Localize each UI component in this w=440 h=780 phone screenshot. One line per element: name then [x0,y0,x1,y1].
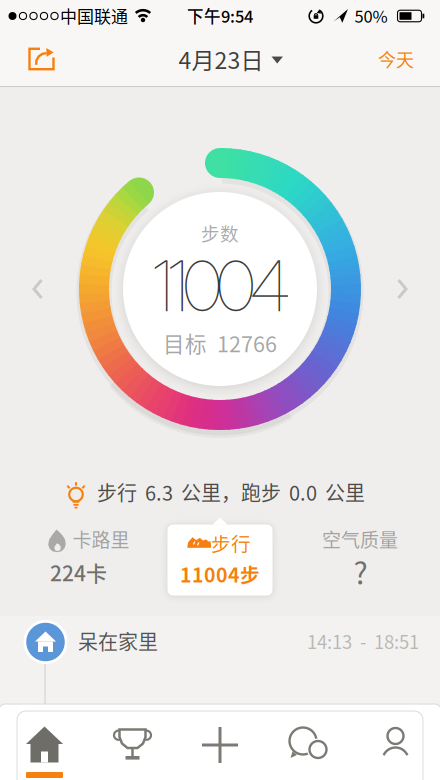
staticText: 14:13 - 18:51 [307,628,419,654]
staticText: 50% [354,4,387,27]
button[interactable]: 4月23日 [160,37,290,81]
button[interactable]: 首页 [0,706,88,780]
button[interactable]: 成就 [88,706,176,780]
button[interactable]: 今天 [364,37,428,81]
button[interactable]: 我的 [352,706,440,780]
staticText: 224卡 [50,557,107,587]
staticText: 下午9:54 [187,4,253,27]
staticText: 11004 [152,244,290,328]
button[interactable]: 呆在家里 [0,609,440,673]
staticText: ? [353,550,367,593]
button[interactable]: 分享 [19,37,63,81]
button[interactable]: 前一天 [20,270,56,308]
staticText: 4月23日 [178,42,263,76]
staticText: 步行 6.3 公里，跑步 0.0 公里 [97,477,365,506]
button[interactable]: 步行 [165,517,275,597]
button[interactable]: 添加 [176,706,264,780]
staticText: 卡路里 [72,525,129,553]
button[interactable]: 消息 [264,706,352,780]
staticText: 呆在家里 [78,626,158,655]
staticText: 今天 [378,46,414,72]
staticText: 步数 [201,220,239,246]
button[interactable]: 后一天 [384,270,420,308]
staticText: 11004步 [180,560,260,588]
staticText: 步行 [211,529,251,557]
staticText: 目标 12766 [163,327,277,358]
staticText: 空气质量 [322,525,398,553]
staticText: 中国联通 [60,3,128,28]
